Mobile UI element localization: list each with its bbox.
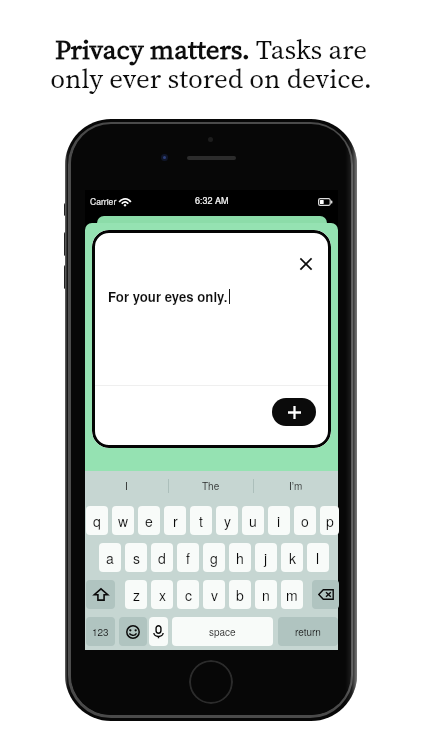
- staticText: k: [289, 548, 296, 568]
- staticText: 6:32 AM: [195, 194, 229, 207]
- staticText: y: [224, 511, 231, 531]
- button[interactable]: t: [190, 506, 212, 535]
- staticText: v: [211, 585, 218, 605]
- button[interactable]: space: [172, 617, 273, 646]
- button[interactable]: f: [177, 543, 199, 572]
- staticText: j: [264, 548, 268, 568]
- staticText: d: [158, 548, 166, 568]
- button[interactable]: c: [177, 580, 199, 609]
- staticText: z: [133, 585, 140, 605]
- button[interactable]: n: [255, 580, 277, 609]
- staticText: 123: [92, 625, 109, 639]
- button[interactable]: i: [268, 506, 290, 535]
- button[interactable]: z: [125, 580, 147, 609]
- button[interactable]: o: [294, 506, 316, 535]
- button[interactable]: Close: [292, 250, 319, 277]
- button[interactable]: w: [112, 506, 134, 535]
- staticText: x: [159, 585, 166, 605]
- staticText: t: [199, 511, 203, 531]
- button[interactable]: q: [86, 506, 108, 535]
- staticText: u: [249, 511, 257, 531]
- staticText: c: [185, 585, 192, 605]
- button[interactable]: Shift: [86, 580, 115, 609]
- button[interactable]: l: [307, 543, 329, 572]
- button[interactable]: Dictate: [149, 617, 168, 646]
- button[interactable]: Emoji: [119, 617, 147, 646]
- button[interactable]: I: [85, 471, 168, 501]
- staticText: o: [301, 511, 309, 531]
- button[interactable]: Backspace: [312, 580, 339, 609]
- button[interactable]: u: [242, 506, 264, 535]
- staticText: return: [295, 625, 321, 639]
- button[interactable]: Home: [189, 660, 233, 704]
- staticText: i: [277, 511, 281, 531]
- button[interactable]: e: [138, 506, 160, 535]
- button[interactable]: x: [151, 580, 173, 609]
- button[interactable]: d: [151, 543, 173, 572]
- staticText: space: [209, 625, 236, 639]
- button[interactable]: y: [216, 506, 238, 535]
- staticText: r: [173, 511, 178, 531]
- staticText: w: [118, 511, 129, 531]
- button[interactable]: The: [169, 471, 253, 501]
- staticText: h: [236, 548, 244, 568]
- button[interactable]: r: [164, 506, 186, 535]
- staticText: Privacy matters. Tasks are only ever sto…: [41, 31, 381, 97]
- staticText: q: [93, 511, 101, 531]
- button[interactable]: p: [320, 506, 339, 535]
- staticText: e: [145, 511, 153, 531]
- button[interactable]: k: [281, 543, 303, 572]
- staticText: The: [202, 479, 220, 493]
- staticText: g: [210, 548, 218, 568]
- button[interactable]: return: [278, 617, 338, 646]
- staticText: m: [286, 585, 298, 605]
- button[interactable]: 123: [86, 617, 115, 646]
- staticText: I: [125, 479, 128, 493]
- button[interactable]: I’m: [254, 471, 338, 501]
- staticText: a: [106, 548, 114, 568]
- staticText: For your eyes only.: [108, 287, 228, 306]
- staticText: b: [236, 585, 244, 605]
- button[interactable]: j: [255, 543, 277, 572]
- staticText: Carrier: [90, 195, 117, 207]
- button[interactable]: m: [281, 580, 303, 609]
- staticText: f: [186, 548, 190, 568]
- staticText: I’m: [289, 479, 303, 493]
- button[interactable]: g: [203, 543, 225, 572]
- button[interactable]: v: [203, 580, 225, 609]
- staticText: s: [133, 548, 140, 568]
- button[interactable]: b: [229, 580, 251, 609]
- button[interactable]: Add task: [272, 398, 316, 426]
- button[interactable]: a: [99, 543, 121, 572]
- button[interactable]: h: [229, 543, 251, 572]
- staticText: l: [316, 548, 320, 568]
- button[interactable]: s: [125, 543, 147, 572]
- staticText: n: [262, 585, 270, 605]
- staticText: p: [326, 511, 334, 531]
